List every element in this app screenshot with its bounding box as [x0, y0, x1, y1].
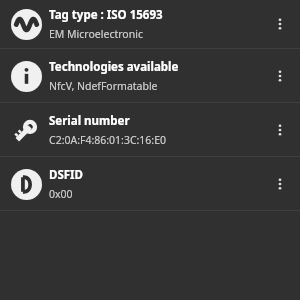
- button[interactable]: More options: [265, 169, 295, 199]
- staticText: Tag type : ISO 15693: [49, 7, 163, 23]
- staticText: DSFID: [49, 167, 83, 183]
- button[interactable]: Tag type: [0, 0, 300, 48]
- button[interactable]: More options: [265, 115, 295, 145]
- staticText: NfcV, NdefFormatable: [49, 79, 158, 93]
- other: Tag type: [9, 7, 43, 41]
- staticText: Serial number: [49, 113, 130, 129]
- staticText: Technologies available: [49, 59, 179, 75]
- other: Serial number: [9, 113, 43, 147]
- button[interactable]: Technologies: [0, 49, 300, 102]
- button[interactable]: More options: [265, 9, 295, 39]
- staticText: 0x00: [49, 187, 73, 201]
- other: DSFID: [9, 167, 43, 201]
- button[interactable]: More options: [265, 61, 295, 91]
- button[interactable]: DSFID: [0, 157, 300, 210]
- staticText: EM Microelectronic: [49, 27, 143, 41]
- button[interactable]: Serial number: [0, 103, 300, 156]
- staticText: C2:0A:F4:86:01:3C:16:E0: [49, 133, 167, 147]
- other: Technologies: [9, 59, 43, 93]
